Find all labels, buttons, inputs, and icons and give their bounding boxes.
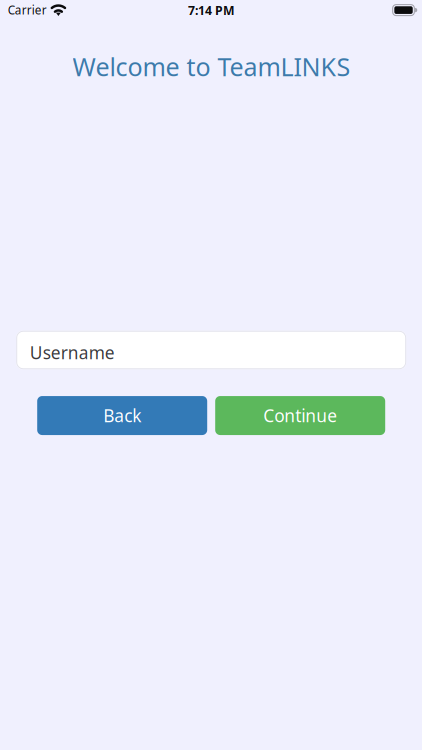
staticText: Continue [263, 404, 337, 427]
staticText: Carrier [8, 2, 47, 18]
button[interactable]: Continue [215, 396, 385, 435]
button[interactable]: Username [16, 331, 406, 369]
staticText: Welcome to TeamLINKS [72, 49, 350, 83]
staticText: Username [30, 341, 115, 364]
staticText: Back [103, 404, 141, 427]
button[interactable]: Back [37, 396, 207, 435]
staticText: 7:14 PM [188, 2, 235, 19]
